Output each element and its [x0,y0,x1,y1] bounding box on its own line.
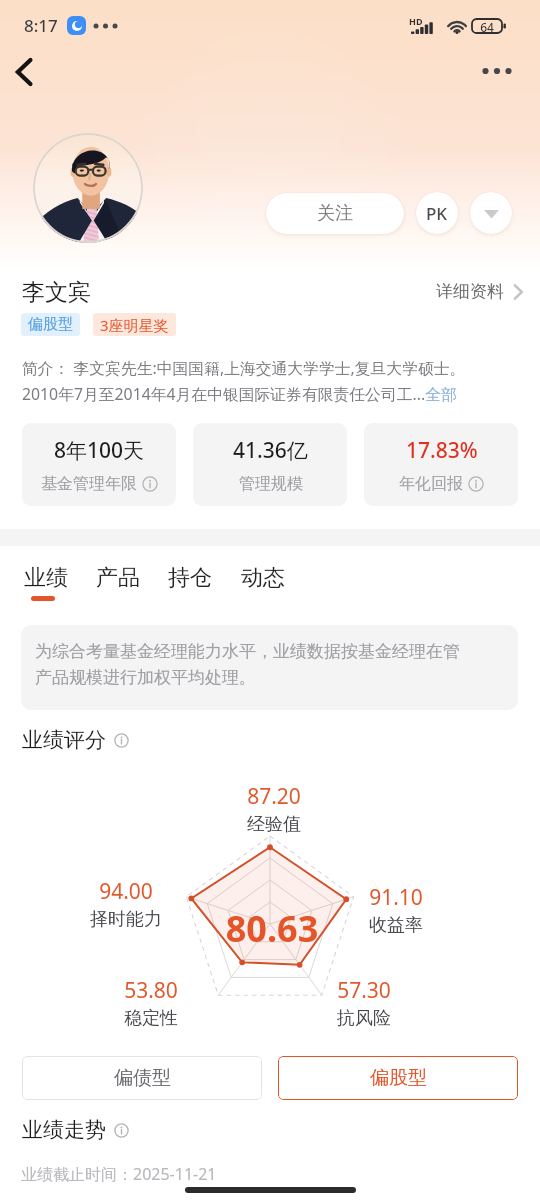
staticText: 偏股型 [28,315,73,334]
staticText: 17.83% [406,436,478,465]
staticText: 关注 [317,202,353,225]
staticText: 80.63 [172,904,372,953]
button[interactable]: 动态 [235,561,297,607]
button[interactable]: 17.83% [364,423,518,506]
button[interactable]: 41.36亿 [193,423,347,506]
staticText: HD [409,15,423,27]
staticText: 收益率 [326,914,466,937]
staticText: 业绩 [24,564,68,592]
button[interactable]: 偏股型 [278,1056,518,1100]
staticText: 稳定性 [81,1007,221,1030]
staticText: 业绩评分 [22,727,106,753]
button[interactable]: Back [1,49,47,95]
staticText: 管理规模 [239,474,303,494]
staticText: 57.30 [294,976,434,1005]
staticText: 8年100天 [54,436,145,465]
button[interactable]: 关注 [266,193,404,234]
staticText: 91.10 [326,883,466,912]
staticText: 产品 [96,564,140,592]
button[interactable]: 业绩 [18,561,80,607]
button[interactable]: 产品 [90,561,152,607]
staticText: 持仓 [168,564,212,592]
button[interactable]: 持仓 [162,561,224,607]
button[interactable] [33,133,143,243]
staticText: 53.80 [81,976,221,1005]
button[interactable]: Expand [470,192,512,234]
staticText: 详细资料 [436,281,504,302]
staticText: 择时能力 [56,908,196,931]
staticText: 动态 [241,564,285,592]
staticText: PK [426,202,448,225]
staticText: 偏债型 [114,1066,171,1090]
staticText: 经验值 [204,813,344,836]
button[interactable]: More options [474,48,520,94]
staticText: 基金管理年限 [41,474,137,494]
staticText: 简介： 李文宾先生:中国国籍,上海交通大学学士,复旦大学硕士。 2010年7月至… [22,357,522,404]
staticText: 8:17 [24,14,58,37]
staticText: 3座明星奖 [100,315,169,335]
staticText: 业绩截止时间：2025-11-21 [21,1163,217,1185]
staticText: 87.20 [204,782,344,811]
button[interactable]: 偏债型 [22,1056,262,1100]
staticText: 业绩走势 [22,1117,106,1143]
staticText: 年化回报 [399,474,463,494]
staticText: 抗风险 [294,1007,434,1030]
staticText: 为综合考量基金经理能力水平，业绩数据按基金经理在管 产品规模进行加权平均处理。 [35,641,513,688]
staticText: 李文宾 [22,278,91,307]
button[interactable]: PK [416,192,458,234]
staticText: 41.36亿 [233,436,308,465]
staticText: 94.00 [56,877,196,906]
staticText: 偏股型 [370,1066,427,1090]
button[interactable]: 详细资料 [436,281,527,302]
staticText: 64 [472,19,502,35]
button[interactable]: 8年100天 [22,423,176,506]
